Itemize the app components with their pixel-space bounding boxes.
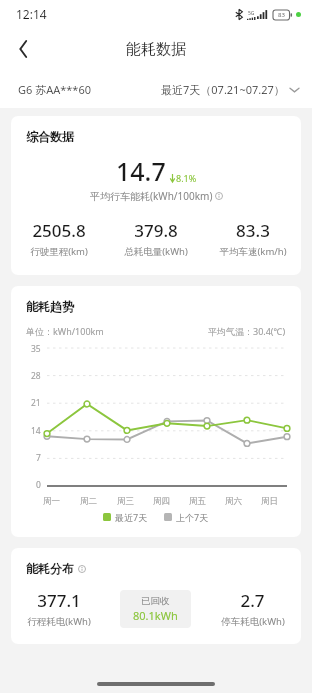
staticText: 能耗趋势 bbox=[26, 299, 74, 314]
staticText: 最近7天 bbox=[115, 511, 148, 523]
staticText: 平均气温：30.4(℃) bbox=[208, 325, 286, 337]
staticText: 上个7天 bbox=[176, 511, 209, 523]
staticText: 平均行车能耗(kWh/100km) bbox=[90, 189, 213, 203]
staticText: 能耗数据 bbox=[126, 40, 186, 59]
staticText: 2.7 bbox=[240, 589, 265, 612]
staticText: 最近7天（07.21~07.27） bbox=[161, 82, 285, 97]
staticText: 377.1 bbox=[37, 589, 81, 612]
button[interactable]: 最近7天（07.21~07.27） bbox=[161, 82, 299, 97]
staticText: 周日 bbox=[261, 496, 278, 507]
staticText: 83 bbox=[278, 11, 285, 19]
staticText: 平均车速(km/h) bbox=[219, 245, 287, 258]
staticText: 总耗电量(kWh) bbox=[124, 245, 188, 258]
staticText: 行驶里程(km) bbox=[30, 245, 88, 258]
staticText: 5G bbox=[248, 10, 255, 17]
staticText: 周二 bbox=[80, 496, 97, 507]
staticText: 14.7 bbox=[116, 154, 166, 188]
staticText: 已回收 bbox=[141, 595, 170, 607]
staticText: 379.8 bbox=[134, 219, 178, 242]
staticText: 周五 bbox=[189, 496, 206, 507]
staticText: 8.1% bbox=[176, 172, 197, 184]
staticText: 21 bbox=[31, 397, 41, 409]
staticText: 周四 bbox=[153, 496, 170, 507]
staticText: 80.1kWh bbox=[133, 608, 178, 623]
staticText: 12:14 bbox=[16, 6, 47, 22]
staticText: 停车耗电(kWh) bbox=[221, 615, 285, 628]
staticText: 能耗分布 bbox=[26, 561, 74, 576]
staticText: 14 bbox=[31, 425, 41, 437]
staticText: 2505.8 bbox=[32, 219, 86, 242]
staticText: 28 bbox=[31, 370, 41, 382]
staticText: 单位：kWh/100km bbox=[26, 325, 104, 337]
button[interactable]: Back bbox=[5, 31, 41, 67]
staticText: 综合数据 bbox=[26, 129, 74, 144]
button[interactable]: G6 苏AA***60 bbox=[18, 82, 91, 97]
staticText: 7 bbox=[36, 452, 41, 464]
staticText: 周六 bbox=[225, 496, 242, 507]
staticText: 0 bbox=[36, 479, 41, 491]
staticText: 行程耗电(kWh) bbox=[27, 615, 91, 628]
staticText: 周一 bbox=[43, 496, 60, 507]
staticText: G6 苏AA***60 bbox=[18, 82, 91, 97]
staticText: 35 bbox=[31, 343, 41, 355]
staticText: 83.3 bbox=[236, 219, 270, 242]
staticText: 周三 bbox=[117, 496, 134, 507]
